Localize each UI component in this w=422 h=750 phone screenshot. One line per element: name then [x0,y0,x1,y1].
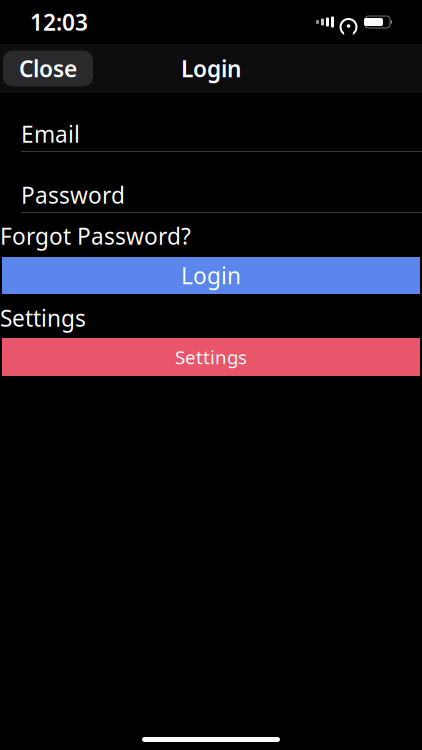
staticText: Settings [175,345,247,369]
staticText: Login [181,53,241,83]
staticText: Password [21,180,125,210]
staticText: Close [19,53,77,83]
button[interactable]: Login [2,257,420,294]
button[interactable]: Settings [2,338,420,376]
button[interactable]: Close [3,50,93,86]
staticText: 12:03 [30,7,88,37]
staticText: Login [181,260,241,290]
staticText: Settings [0,303,86,333]
staticText: Email [21,119,80,149]
staticText: Forgot Password? [0,221,191,251]
button[interactable]: Forgot Password? [0,221,191,251]
